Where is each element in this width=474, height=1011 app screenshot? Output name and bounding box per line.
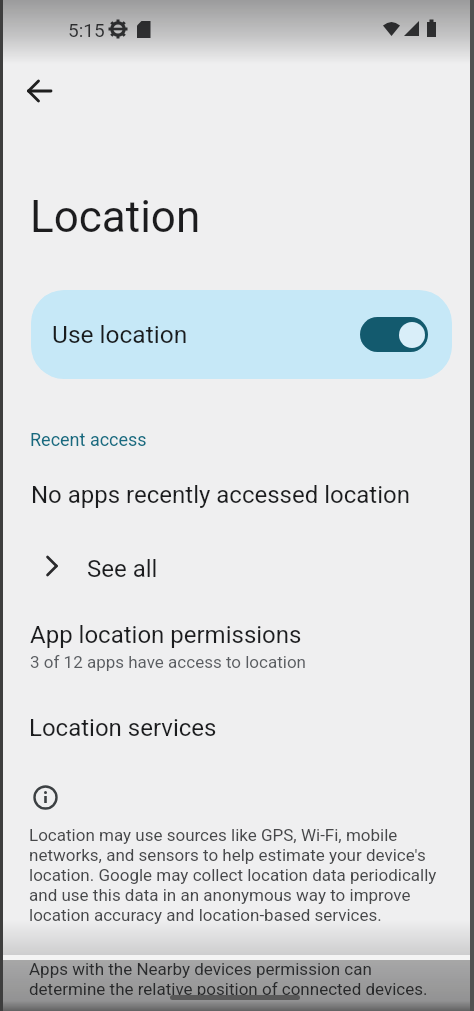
staticText: App location permissions [30, 621, 302, 649]
staticText: No apps recently accessed location [31, 481, 410, 509]
button[interactable]: Location services [29, 714, 217, 742]
button[interactable]: App location permissions [30, 621, 430, 672]
staticText: See all [87, 555, 158, 583]
staticText: Location [30, 191, 201, 243]
staticText: Use location [52, 320, 188, 349]
staticText: 5:15 [68, 19, 105, 41]
staticText: Recent access [30, 429, 147, 450]
button[interactable] [17, 69, 61, 113]
staticText: Location may use sources like GPS, Wi-Fi… [29, 825, 437, 925]
button[interactable]: See all [30, 540, 445, 592]
button[interactable]: Use location [31, 290, 452, 379]
staticText: Apps with the Nearby devices permission … [29, 959, 428, 999]
staticText: 3 of 12 apps have access to location [30, 652, 306, 672]
